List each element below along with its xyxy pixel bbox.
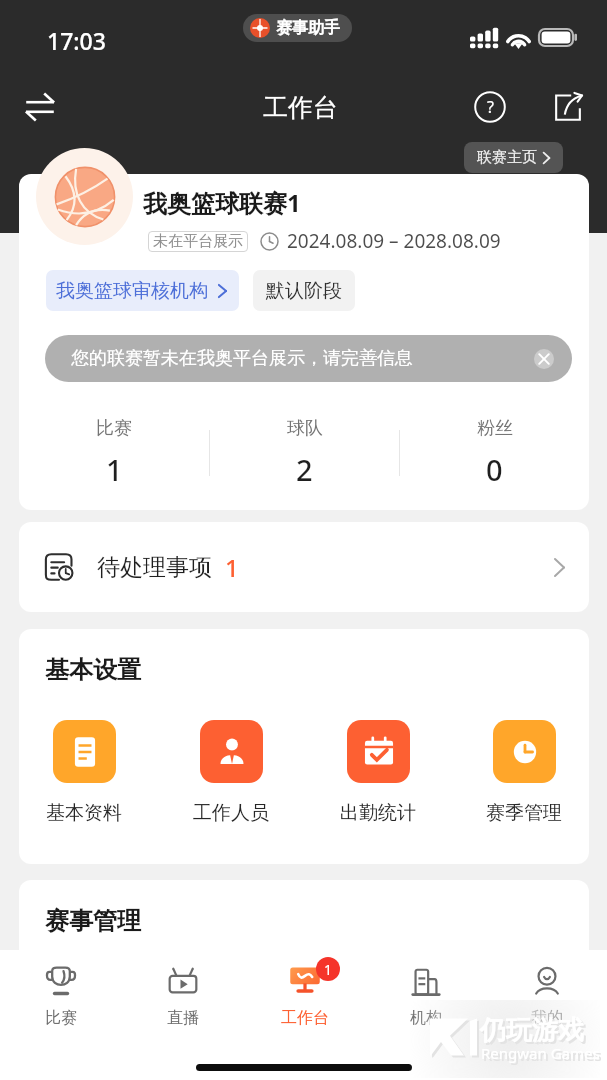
staticText: 0	[486, 450, 503, 489]
button[interactable]: 比赛	[0, 950, 122, 1042]
button[interactable]: 出勤统计	[318, 720, 438, 825]
staticText: 出勤统计	[340, 801, 416, 825]
staticText: ?	[487, 96, 494, 118]
button[interactable]: 直播	[122, 950, 244, 1042]
staticText: 仍玩游戏	[480, 1014, 584, 1047]
button[interactable]: 默认阶段	[253, 270, 355, 311]
staticText: 默认阶段	[266, 279, 342, 303]
staticText: 工作台	[263, 92, 338, 123]
button[interactable]: Dismiss	[533, 348, 555, 370]
staticText: 比赛	[45, 1008, 77, 1028]
button[interactable]: Help	[466, 83, 514, 131]
staticText: 待处理事项	[97, 553, 212, 582]
button[interactable]: Share	[544, 83, 592, 131]
button[interactable]: 基本资料	[24, 720, 144, 825]
button[interactable]: 联赛主页	[464, 142, 563, 173]
staticText: 我奥篮球审核机构	[56, 279, 208, 303]
staticText: 工作台	[281, 1008, 329, 1028]
staticText: 赛事助手	[276, 18, 340, 38]
staticText: 2	[296, 450, 313, 489]
button[interactable]: 待处理事项	[19, 522, 589, 612]
staticText: 仍玩游戏	[482, 1016, 586, 1049]
staticText: 未在平台展示	[153, 232, 243, 251]
staticText: 比赛	[96, 417, 132, 440]
button[interactable]: 机构	[365, 950, 486, 1042]
staticText: 1	[324, 960, 333, 979]
staticText: 粉丝	[477, 417, 513, 440]
staticText: 1	[225, 551, 239, 584]
staticText: 基本资料	[46, 801, 122, 825]
button[interactable]: Switch account	[16, 83, 64, 131]
button[interactable]: 工作人员	[171, 720, 291, 825]
staticText: 球队	[287, 417, 323, 440]
button[interactable]: 1	[244, 950, 365, 1042]
button[interactable]: 比赛	[19, 408, 209, 498]
staticText: 我奥篮球联赛1	[143, 186, 301, 219]
button[interactable]: 球队	[210, 408, 399, 498]
staticText: 联赛主页	[477, 148, 537, 167]
staticText: 17:03	[47, 25, 106, 56]
button[interactable]: 我的	[486, 950, 607, 1042]
staticText: 工作人员	[193, 801, 269, 825]
staticText: Rengwan Games	[481, 1043, 600, 1063]
staticText: Rengwan Games	[483, 1045, 602, 1065]
staticText: 直播	[167, 1008, 199, 1028]
staticText: 赛事管理	[45, 906, 141, 936]
button[interactable]: 粉丝	[400, 408, 589, 498]
staticText: 基本设置	[45, 655, 141, 685]
staticText: 2024.08.09 – 2028.08.09	[287, 228, 501, 254]
button[interactable]: 赛季管理	[464, 720, 584, 825]
button[interactable]: 您的联赛暂未在我奥平台展示，请完善信息	[45, 335, 572, 382]
staticText: 您的联赛暂未在我奥平台展示，请完善信息	[71, 347, 413, 370]
staticText: 我的	[531, 1008, 563, 1028]
staticText: 1	[106, 450, 123, 489]
staticText: 赛季管理	[486, 801, 562, 825]
staticText: 机构	[410, 1008, 442, 1028]
button[interactable]: 我奥篮球审核机构	[46, 270, 239, 311]
